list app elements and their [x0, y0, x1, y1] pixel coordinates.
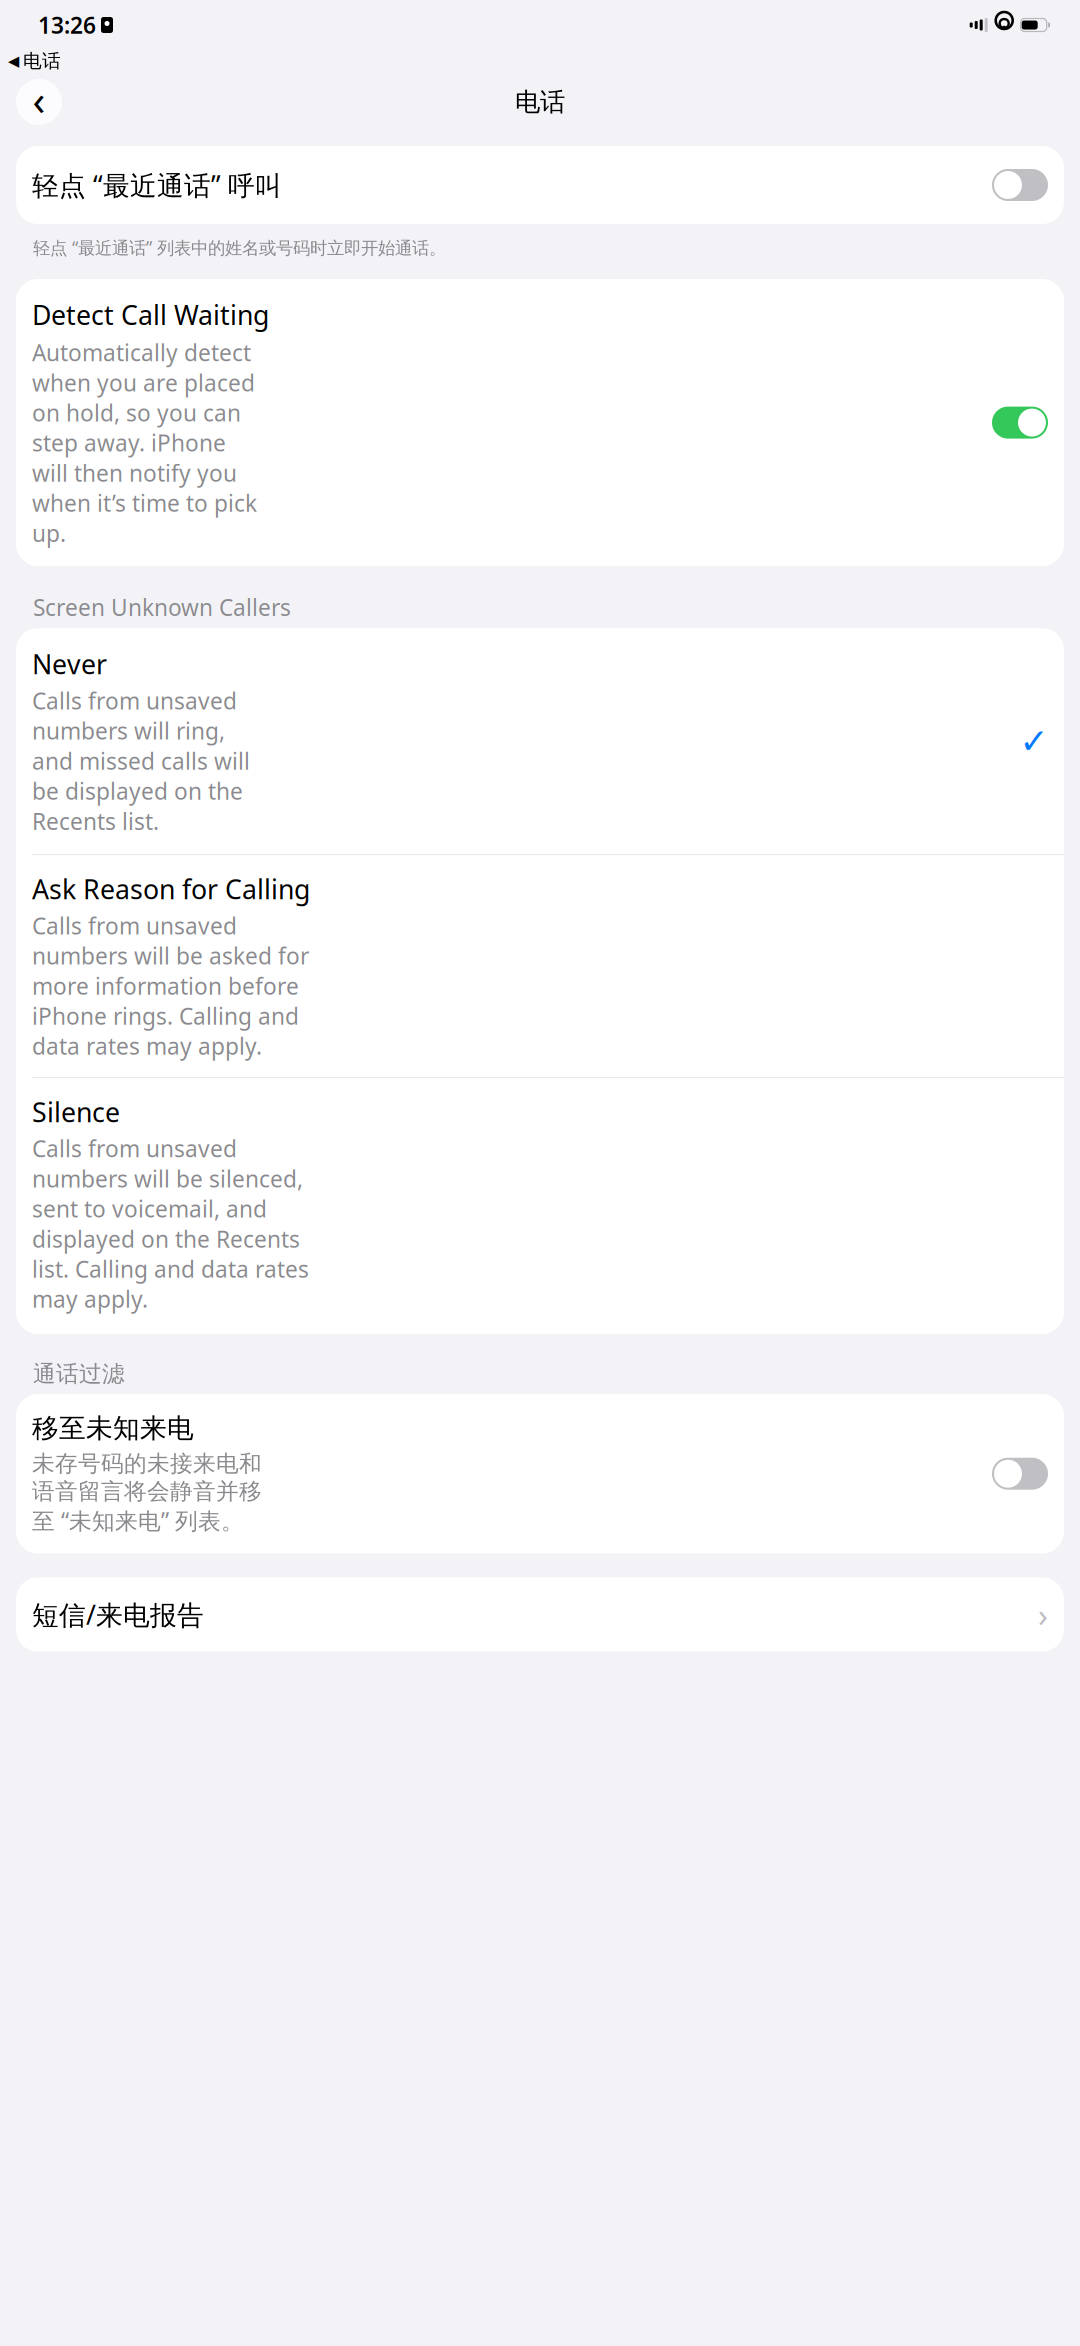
- button[interactable]: 短信/来电报告: [16, 1577, 1064, 1651]
- staticText: 轻点 “最近通话” 呼叫: [32, 167, 282, 203]
- staticText: Ask Reason for Calling: [32, 871, 310, 907]
- staticText: 通话过滤: [33, 1360, 125, 1388]
- staticText: Silence: [32, 1094, 120, 1129]
- button[interactable]: Silence: [16, 1078, 1064, 1334]
- staticText: 未存号码的未接来电和语音留言将会静音并移至 “未知来电” 列表。: [32, 1450, 262, 1535]
- staticText: Calls from unsaved numbers will be asked…: [32, 911, 309, 1061]
- staticText: Detect Call Waiting: [32, 297, 269, 332]
- button[interactable]: Ask Reason for Calling: [16, 855, 1064, 1077]
- button[interactable]: ◀: [0, 47, 61, 74]
- staticText: ◀: [8, 53, 19, 69]
- staticText: 13:26: [38, 10, 96, 40]
- button[interactable]: Detect Call Waiting: [16, 279, 1064, 566]
- button[interactable]: 轻点 “最近通话” 呼叫: [16, 146, 1064, 224]
- staticText: 电话: [515, 86, 565, 117]
- staticText: Calls from unsaved numbers will be silen…: [32, 1133, 309, 1314]
- button[interactable]: 移至未知来电: [16, 1394, 1064, 1553]
- staticText: 轻点 “最近通话” 列表中的姓名或号码时立即开始通话。: [33, 236, 446, 259]
- staticText: Calls from unsaved numbers will ring, an…: [32, 686, 250, 836]
- staticText: ›: [1038, 1593, 1048, 1636]
- button[interactable]: Never: [16, 628, 1064, 854]
- staticText: Automatically detect when you are placed…: [32, 337, 257, 548]
- staticText: 移至未知来电: [32, 1412, 194, 1445]
- staticText: ✓: [1019, 721, 1048, 761]
- button[interactable]: Back: [16, 72, 62, 132]
- staticText: Never: [32, 646, 107, 682]
- staticText: 短信/来电报告: [32, 1597, 204, 1632]
- staticText: 电话: [23, 49, 61, 72]
- staticText: Screen Unknown Callers: [33, 592, 291, 622]
- staticText: ‹: [32, 72, 45, 127]
